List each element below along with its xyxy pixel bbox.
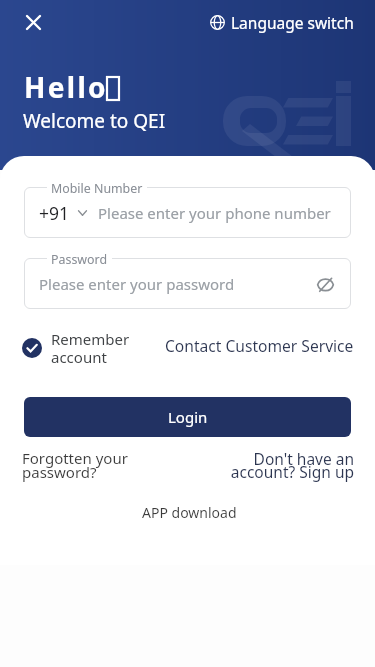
staticText: APP download (142, 503, 237, 522)
staticText: Password (51, 251, 108, 268)
button[interactable]: Language switch (210, 10, 354, 34)
button[interactable]: Remember account (22, 329, 130, 367)
staticText: Please enter your phone number (98, 203, 331, 223)
staticText: Hello (24, 68, 108, 106)
staticText: Login (168, 407, 208, 427)
button[interactable]: APP download (142, 503, 237, 522)
staticText: Contact Customer Service (165, 335, 354, 356)
button[interactable]: Don't have an account? Sign up (191, 448, 354, 482)
button[interactable]: Show password (312, 272, 338, 298)
button[interactable]: Close (17, 6, 49, 38)
button[interactable]: Login (24, 397, 351, 437)
staticText: Remember account (51, 329, 130, 367)
staticText: Mobile Number (51, 180, 143, 197)
staticText: Don't have an account? Sign up (191, 448, 354, 482)
button[interactable]: Forgotten your password? (22, 448, 128, 482)
button[interactable]: Contact Customer Service (165, 335, 354, 356)
staticText: Language switch (231, 12, 354, 33)
staticText: Please enter your password (39, 274, 235, 294)
staticText: +91 (39, 201, 70, 225)
staticText: Forgotten your password? (22, 448, 128, 482)
staticText: Welcome to QEI (23, 108, 166, 134)
